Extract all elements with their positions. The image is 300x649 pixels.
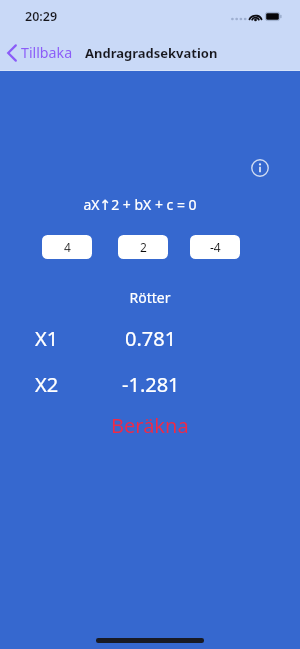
button[interactable]: Tillbaka	[7, 43, 73, 62]
button[interactable]: Beräkna	[99, 409, 201, 442]
staticText: 0.781	[125, 325, 177, 352]
staticText: 2	[140, 239, 147, 255]
staticText: Rötter	[0, 288, 300, 307]
staticText: Andragradsekvation	[85, 44, 218, 62]
staticText: Beräkna	[111, 412, 189, 439]
staticText: X2	[35, 371, 59, 398]
staticText: X1	[35, 325, 59, 352]
button[interactable]: 4	[42, 235, 92, 259]
button[interactable]: -4	[190, 235, 240, 259]
staticText: 20:29	[25, 8, 58, 25]
staticText: -4	[210, 239, 221, 255]
staticText: aX↑2 + bX + c = 0	[0, 195, 280, 214]
button[interactable]: Information	[251, 159, 269, 177]
staticText: Tillbaka	[21, 43, 73, 62]
staticText: -1.281	[122, 371, 180, 398]
button[interactable]: 2	[118, 235, 168, 259]
staticText: 4	[64, 239, 71, 255]
